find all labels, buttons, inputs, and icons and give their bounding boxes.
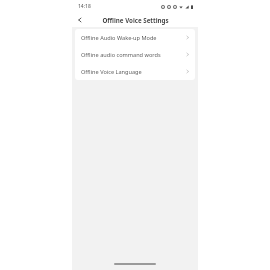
button[interactable]: Offline audio command words [75, 46, 195, 63]
staticText: Offline Voice Settings [102, 16, 169, 24]
staticText: Offline Voice Language [81, 68, 185, 76]
button[interactable]: Offline Voice Language [75, 63, 195, 80]
button[interactable]: Back [75, 15, 85, 25]
staticText: 14:18 [78, 3, 91, 10]
staticText: Offline audio command words [81, 51, 185, 59]
button[interactable]: Offline Audio Wake-up Mode [75, 29, 195, 46]
staticText: Offline Audio Wake-up Mode [81, 34, 185, 42]
